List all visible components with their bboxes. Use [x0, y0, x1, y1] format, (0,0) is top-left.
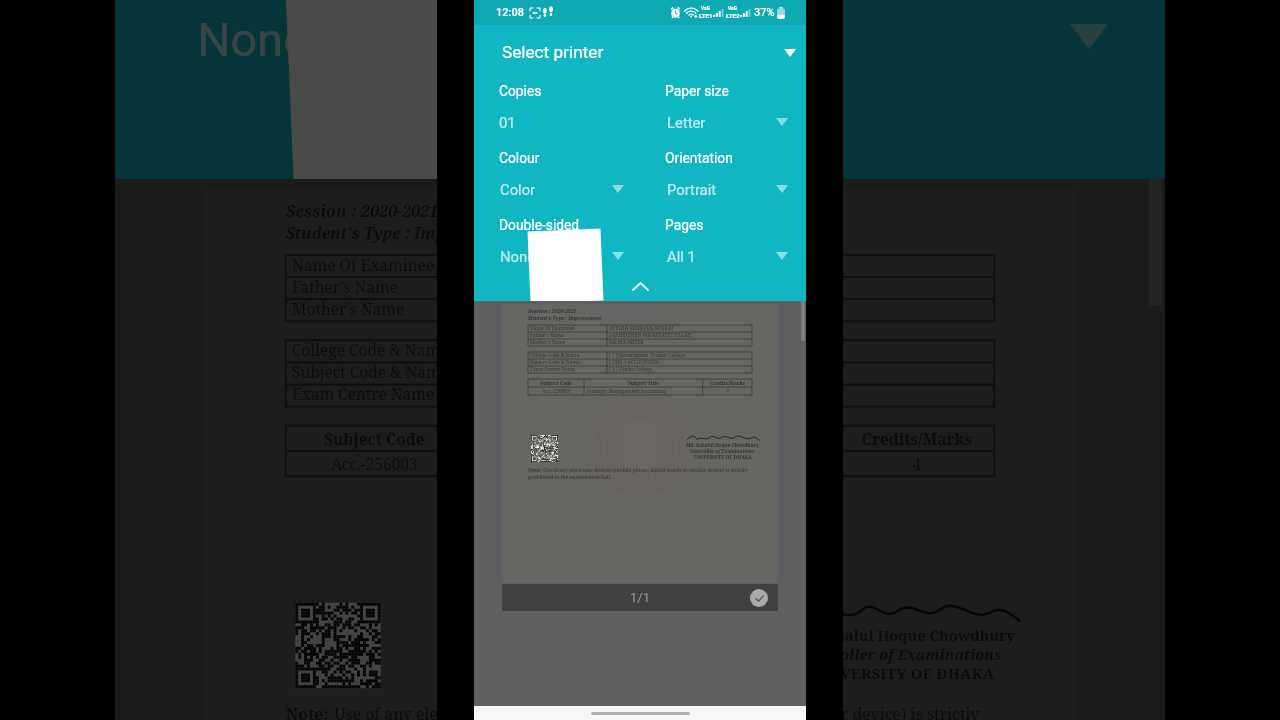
- staticText: Session : 2020-2021: [286, 201, 441, 223]
- staticText: AYESHA SIDDIQUA NUSRAT: [609, 325, 674, 332]
- staticText: 4: [912, 454, 921, 476]
- staticText: Credits/Marks: [861, 429, 972, 451]
- staticText: Portrait: [667, 181, 717, 198]
- button[interactable]: All 1: [667, 243, 788, 269]
- staticText: Student's Type : Improvement: [528, 315, 603, 322]
- button[interactable]: None: [500, 243, 624, 269]
- staticText: Acc.-256003: [542, 388, 570, 395]
- staticText: Father's Name: [292, 277, 400, 299]
- staticText: Color: [500, 181, 536, 198]
- staticText: Strategic Management Accounting: [587, 388, 667, 395]
- staticText: Pages: [665, 217, 704, 233]
- staticText: FAKHRUDDIN MD KEFAYET ULLAH: [609, 332, 692, 339]
- staticText: 12:08: [496, 6, 524, 19]
- staticText: [ 2501 ] ACCOUNTING: [542, 362, 703, 384]
- staticText: Subject Code & Name: [530, 359, 580, 366]
- staticText: AYESHA SIDDIQUA NUSRAT: [542, 255, 748, 277]
- staticText: Father's Name: [530, 332, 564, 339]
- staticText: SALMA AKTER: [542, 299, 653, 321]
- staticText: Note:: [286, 704, 330, 720]
- staticText: College Code & Name: [530, 352, 580, 359]
- staticText: UNIVERSITY OF DHAKA: [694, 454, 752, 461]
- staticText: LTE2: [726, 12, 740, 19]
- button[interactable]: Color: [500, 176, 624, 202]
- staticText: [ 7 ] Government Titumir College: [609, 352, 686, 359]
- staticText: Controller of Examinations: [798, 644, 1004, 663]
- staticText: Letter: [667, 114, 706, 131]
- staticText: Name Of Examinee: [530, 325, 575, 332]
- button[interactable]: All 1: [725, 0, 1108, 78]
- staticText: 4: [726, 388, 729, 395]
- staticText: Colour: [499, 150, 540, 166]
- staticText: [ 7 ] Government Titumir College: [542, 340, 785, 362]
- staticText: Acc.-256003: [330, 454, 419, 476]
- staticText: VoG: [728, 6, 738, 12]
- staticText: VoG: [701, 6, 711, 12]
- staticText: Orientation: [665, 150, 733, 166]
- staticText: Strategic Management Accounting: [472, 454, 725, 476]
- staticText: Select printer: [502, 42, 604, 62]
- staticText: Double-sided: [499, 217, 580, 233]
- staticText: All 1: [667, 248, 696, 265]
- staticText: SALMA AKTER: [609, 339, 644, 346]
- staticText: Note:: [528, 467, 542, 474]
- button[interactable]: Portrait: [667, 176, 788, 202]
- staticText: Exam Centre Name: [530, 366, 575, 373]
- staticText: prohibited in the examination hall.: [528, 474, 612, 481]
- button[interactable]: Letter: [667, 109, 788, 135]
- staticText: LTE1: [699, 12, 713, 19]
- button[interactable]: 01: [499, 109, 639, 135]
- staticText: Controller of Examinations: [690, 448, 755, 454]
- staticText: All 1: [725, 11, 817, 65]
- staticText: Copies: [499, 83, 542, 99]
- staticText: Subject Code: [324, 429, 425, 451]
- staticText: None: [197, 11, 311, 65]
- staticText: FAKHRUDDIN MD KEFAYET ULLAH: [542, 277, 804, 299]
- staticText: Credits/Marks: [710, 380, 745, 387]
- staticText: None: [500, 248, 536, 265]
- button[interactable]: None: [197, 0, 589, 78]
- staticText: College Code & Name: [292, 340, 450, 362]
- staticText: 01: [499, 114, 516, 131]
- button[interactable]: Collapse print options: [623, 272, 657, 300]
- staticText: Student's Type : Improvement: [286, 223, 523, 245]
- staticText: Use of any electronic devices (mobile ph…: [330, 704, 982, 720]
- staticText: Subject Title: [628, 380, 659, 387]
- staticText: [ 2501 ] ACCOUNTING: [609, 359, 660, 366]
- button[interactable]: Confirm print: [750, 589, 768, 607]
- staticText: Session : 2020-2021: [528, 308, 577, 315]
- staticText: Use of any electronic devices (mobile ph…: [542, 467, 748, 474]
- staticText: Subject Code & Name: [292, 362, 450, 384]
- staticText: 1/1: [630, 590, 650, 605]
- staticText: Md. Bahalul Hoque Chowdhury: [785, 625, 1016, 644]
- button[interactable]: Select printer: [474, 31, 806, 73]
- staticText: Subject Code: [540, 380, 572, 387]
- staticText: 37%: [754, 6, 775, 19]
- staticText: [ 1 ] Dhaka College: [542, 384, 681, 407]
- button[interactable]: Collapse print options: [586, 87, 694, 176]
- staticText: [ 1 ] Dhaka College: [609, 366, 653, 373]
- staticText: Exam Centre Name: [292, 384, 434, 407]
- staticText: Md. Bahalul Hoque Chowdhury: [686, 442, 759, 448]
- staticText: Name Of Examinee: [292, 255, 434, 277]
- staticText: Mother's Name: [292, 299, 406, 321]
- staticText: Subject Title: [602, 429, 700, 451]
- staticText: Mother's Name: [530, 339, 566, 346]
- staticText: Paper size: [665, 83, 729, 99]
- staticText: UNIVERSITY OF DHAKA: [811, 663, 994, 685]
